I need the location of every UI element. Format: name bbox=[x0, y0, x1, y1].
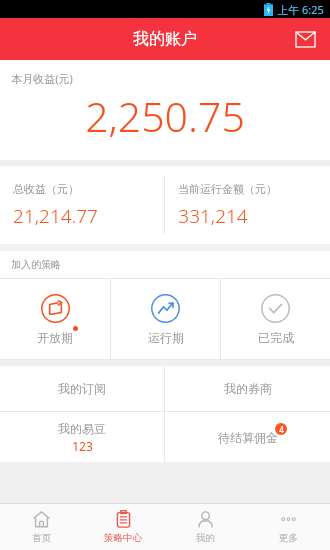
staticText: 已完成 bbox=[258, 330, 294, 345]
staticText: 首页 bbox=[32, 532, 51, 544]
button[interactable]: 我的 bbox=[164, 504, 247, 550]
staticText: 我的易豆 bbox=[58, 421, 106, 436]
staticText: 运行期 bbox=[148, 330, 184, 345]
button[interactable]: 当前运行金额（元） bbox=[165, 166, 330, 244]
staticText: 策略中心 bbox=[104, 532, 142, 544]
staticText: 当前运行金额（元） bbox=[178, 182, 277, 196]
staticText: 加入的策略 bbox=[11, 258, 61, 271]
button[interactable]: 策略中心 bbox=[82, 504, 164, 550]
staticText: 总收益（元） bbox=[13, 182, 79, 196]
staticText: 上午 6:25 bbox=[277, 2, 324, 17]
button[interactable]: 首页 bbox=[0, 504, 82, 550]
button[interactable]: 我的易豆 bbox=[0, 412, 164, 462]
button[interactable]: 总收益（元） bbox=[0, 166, 164, 244]
staticText: 更多 bbox=[279, 532, 298, 544]
button[interactable]: 我的订阅 bbox=[0, 366, 164, 411]
button[interactable]: Messages bbox=[288, 22, 322, 56]
staticText: 331,214 bbox=[178, 203, 248, 229]
staticText: 123 bbox=[72, 438, 93, 454]
staticText: 4 bbox=[279, 424, 284, 435]
button[interactable]: 运行期 bbox=[111, 279, 220, 359]
staticText: 我的 bbox=[196, 532, 215, 544]
staticText: 开放期 bbox=[37, 330, 73, 345]
staticText: 我的订阅 bbox=[58, 381, 106, 396]
button[interactable]: 更多 bbox=[247, 504, 330, 550]
staticText: 我的账户 bbox=[133, 29, 197, 49]
button[interactable]: 已完成 bbox=[221, 279, 330, 359]
button[interactable]: 我的券商 bbox=[165, 366, 330, 411]
button[interactable]: 待结算佣金 bbox=[165, 412, 330, 462]
staticText: 我的券商 bbox=[224, 381, 272, 396]
staticText: 21,214.77 bbox=[13, 203, 98, 229]
staticText: 2,250.75 bbox=[85, 88, 245, 144]
staticText: 本月收益(元) bbox=[11, 71, 73, 86]
button[interactable]: 开放期 bbox=[0, 279, 110, 359]
staticText: 待结算佣金 bbox=[218, 430, 278, 445]
